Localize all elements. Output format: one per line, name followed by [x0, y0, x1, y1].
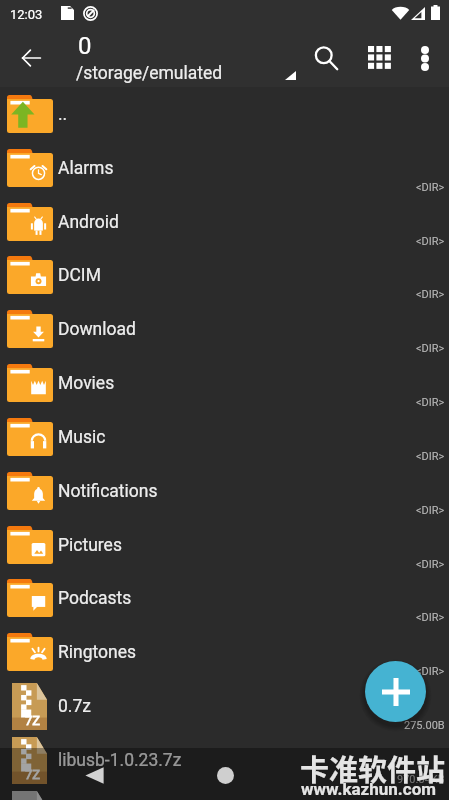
button[interactable]: Grid view	[359, 37, 399, 77]
staticText: Alarms	[58, 158, 114, 179]
staticText: Podcasts	[58, 588, 132, 609]
button[interactable]: Music	[0, 410, 449, 464]
staticText: <DIR>	[416, 235, 445, 248]
button[interactable]: Pictures	[0, 518, 449, 572]
staticText: 卡准软件站	[300, 747, 446, 789]
staticText: <DIR>	[416, 504, 445, 517]
button[interactable]: 7Z	[0, 679, 449, 733]
staticText: 12:03	[10, 7, 43, 22]
staticText: Notifications	[58, 481, 158, 502]
staticText: www.kazhun.com	[301, 779, 436, 799]
button[interactable]: Search	[306, 38, 346, 78]
button[interactable]: Ringtones	[0, 625, 449, 679]
staticText: 0.7z	[58, 696, 91, 717]
staticText: <DIR>	[416, 665, 445, 678]
button[interactable]: Home	[205, 755, 245, 795]
staticText: libusb-1.0.23.7z	[58, 750, 182, 771]
staticText: Download	[58, 319, 136, 340]
button[interactable]: ..	[0, 87, 449, 141]
button[interactable]	[0, 787, 449, 800]
button[interactable]: Movies	[0, 356, 449, 410]
staticText: 7Z	[25, 767, 41, 782]
staticText: <DIR>	[416, 396, 445, 409]
button[interactable]: DCIM	[0, 248, 449, 302]
staticText: <DIR>	[416, 450, 445, 463]
staticText: <DIR>	[416, 181, 445, 194]
staticText: 7Z	[25, 713, 41, 728]
button[interactable]: Podcasts	[0, 571, 449, 625]
button[interactable]: Download	[0, 302, 449, 356]
button[interactable]: Android	[0, 195, 449, 249]
staticText: 970.34KB	[397, 773, 445, 786]
staticText: Pictures	[58, 535, 122, 556]
staticText: <DIR>	[416, 288, 445, 301]
staticText: Android	[58, 212, 119, 233]
button[interactable]: More options	[405, 38, 445, 78]
staticText: 275.00B	[404, 719, 445, 732]
button[interactable]: Alarms	[0, 141, 449, 195]
button[interactable]: Back	[11, 38, 51, 78]
staticText: 0	[78, 32, 92, 60]
button[interactable]: Add	[365, 661, 426, 722]
staticText: Music	[58, 427, 106, 448]
button[interactable]: Notifications	[0, 464, 449, 518]
staticText: <DIR>	[416, 342, 445, 355]
staticText: Movies	[58, 373, 115, 394]
staticText: <DIR>	[416, 611, 445, 624]
button[interactable]: 7Z	[0, 733, 449, 787]
staticText: Ringtones	[58, 642, 137, 663]
staticText: <DIR>	[416, 558, 445, 571]
staticText: DCIM	[58, 265, 101, 286]
staticText: ..	[58, 104, 68, 125]
button[interactable]: Back	[74, 755, 114, 795]
staticText: /storage/emulated	[76, 63, 223, 84]
